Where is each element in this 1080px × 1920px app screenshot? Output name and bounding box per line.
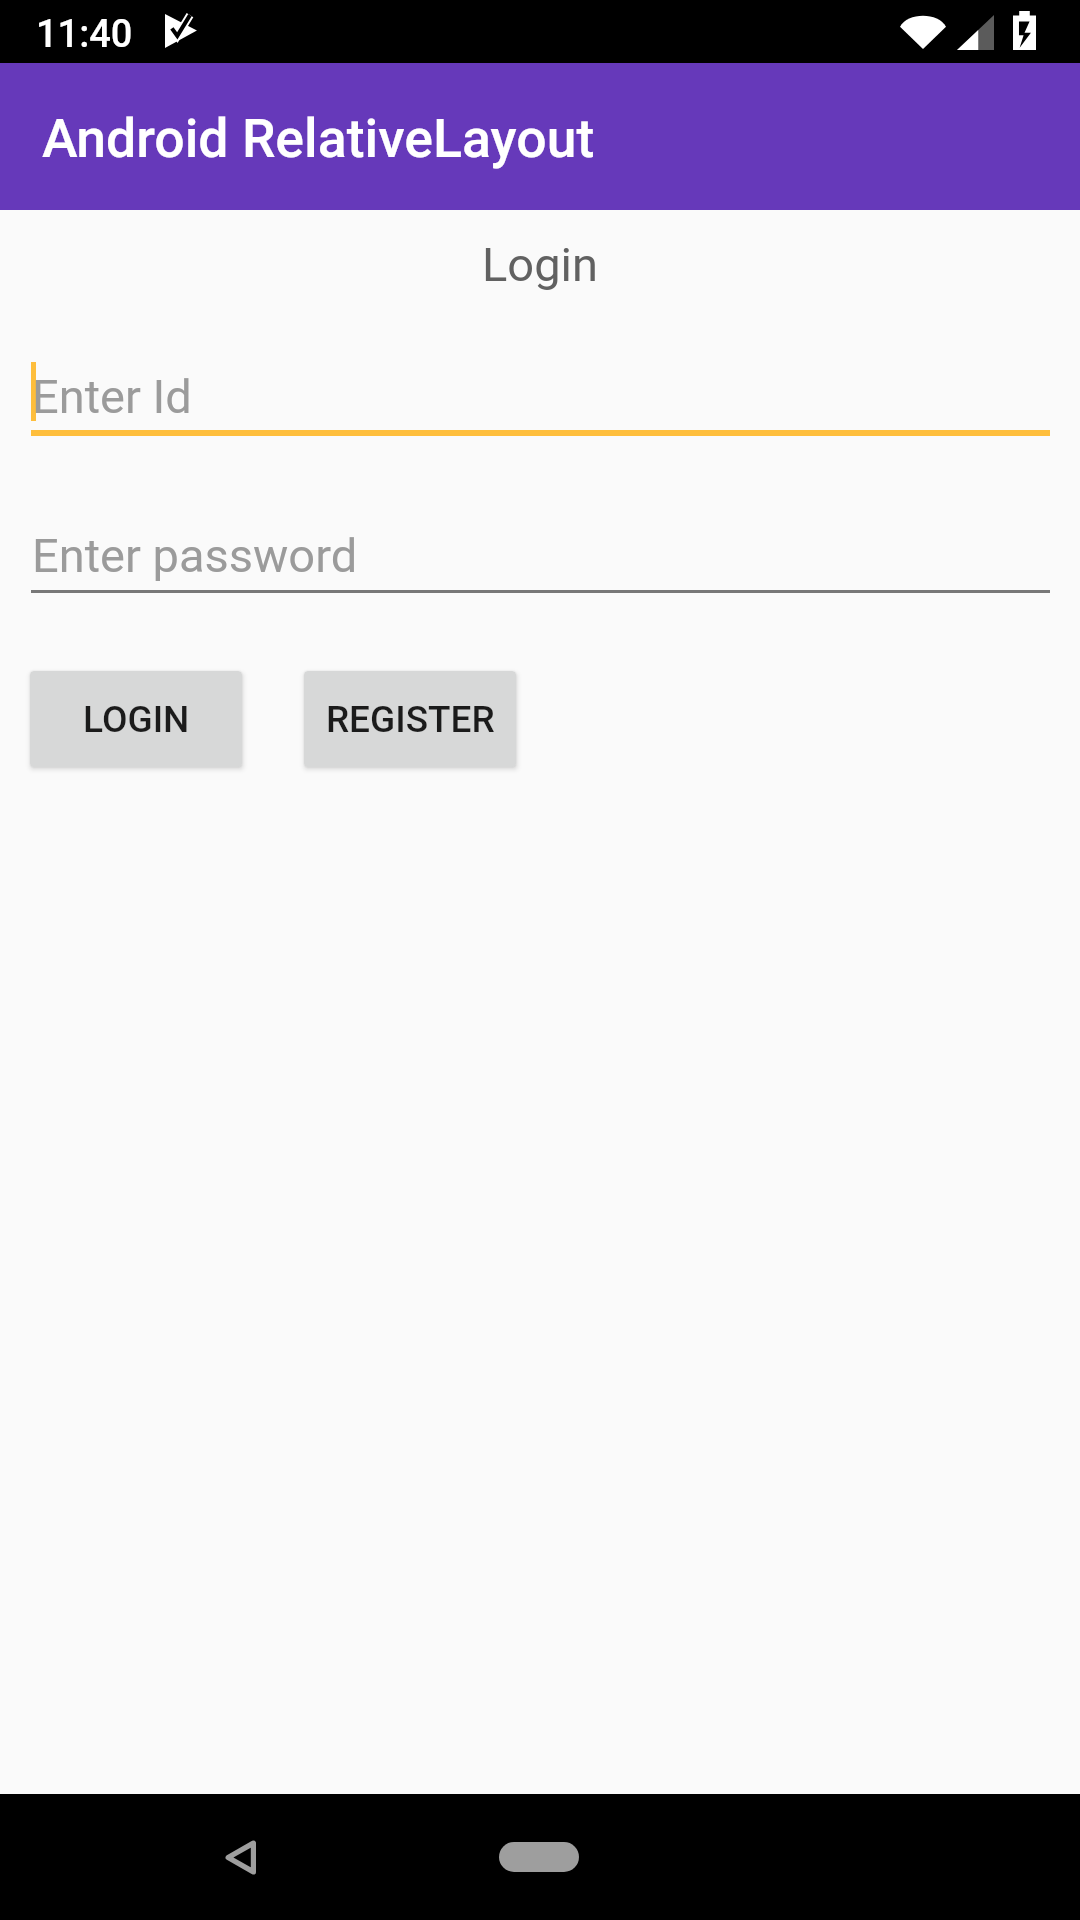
staticText: Enter Id xyxy=(32,369,192,424)
button[interactable] xyxy=(31,350,1050,436)
staticText: Login xyxy=(0,237,1080,292)
button[interactable]: Home xyxy=(484,1827,594,1887)
staticText: Android RelativeLayout xyxy=(42,107,595,170)
button[interactable] xyxy=(31,510,1050,593)
button[interactable]: REGISTER xyxy=(304,671,516,767)
button[interactable]: LOGIN xyxy=(30,671,242,767)
staticText: Enter password xyxy=(32,528,358,583)
staticText: 11:40 xyxy=(36,12,133,57)
button[interactable]: Back xyxy=(205,1822,275,1892)
other: Wi-Fi xyxy=(900,12,946,49)
staticText: REGISTER xyxy=(326,698,495,741)
other: Play Store update xyxy=(163,12,198,49)
other: Battery charging xyxy=(1013,11,1036,50)
staticText: LOGIN xyxy=(83,698,190,741)
other: Mobile signal xyxy=(957,15,994,50)
